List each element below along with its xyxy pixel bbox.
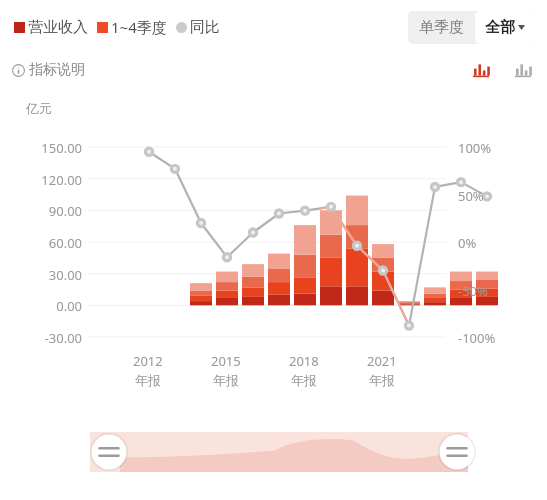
- button[interactable]: 单季度: [408, 11, 475, 44]
- staticText: 营业收入: [28, 18, 88, 37]
- staticText: 2015: [211, 352, 241, 370]
- staticText: 0.00: [14, 297, 82, 315]
- staticText: 全部: [485, 18, 515, 37]
- staticText: 50%: [458, 187, 484, 205]
- button[interactable]: 全部: [475, 11, 535, 44]
- staticText: 2021: [367, 352, 397, 370]
- staticText: 2012: [133, 352, 163, 370]
- staticText: 年报: [213, 372, 239, 388]
- staticText: 亿元: [26, 100, 52, 116]
- staticText: 1~4季度: [111, 17, 167, 37]
- staticText: 2018: [289, 352, 319, 370]
- staticText: 年报: [369, 372, 395, 388]
- staticText: 90.00: [14, 202, 82, 220]
- staticText: 30.00: [14, 266, 82, 284]
- staticText: 指标说明: [29, 61, 85, 79]
- button[interactable]: Range handle: [90, 433, 128, 471]
- staticText: -50%: [458, 282, 488, 300]
- button[interactable]: 指标说明: [12, 61, 85, 79]
- button[interactable]: Range handle: [438, 433, 476, 471]
- button[interactable]: Column chart view: [513, 60, 533, 80]
- button[interactable]: Bar chart view: [471, 60, 491, 80]
- staticText: 同比: [190, 18, 220, 37]
- staticText: 100%: [458, 139, 492, 157]
- staticText: -100%: [458, 329, 496, 347]
- staticText: 120.00: [14, 171, 82, 189]
- staticText: 单季度: [419, 18, 464, 37]
- staticText: 年报: [291, 372, 317, 388]
- staticText: 年报: [135, 372, 161, 388]
- staticText: 0%: [458, 234, 477, 252]
- staticText: -30.00: [14, 329, 82, 347]
- staticText: 60.00: [14, 234, 82, 252]
- staticText: 150.00: [14, 139, 82, 157]
